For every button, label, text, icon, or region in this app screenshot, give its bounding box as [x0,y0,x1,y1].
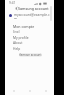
staticText: Samsung account [18,6,49,11]
button[interactable]: Mon compte [13,23,35,29]
staticText: Email [13,30,20,34]
button[interactable]: Back [38,88,54,94]
staticText: Mon compte [13,24,35,29]
staticText: About [13,40,23,44]
button[interactable]: Navigate up [13,5,19,11]
button[interactable]: Help [13,45,21,51]
staticText: 9:41 [9,1,16,5]
staticText: My profile [13,35,29,39]
button[interactable]: Recents [5,88,22,94]
button[interactable]: My profile [13,34,29,40]
staticText: Remove account [19,53,42,57]
button[interactable]: myaccount@example.com [5,12,54,19]
button[interactable]: Home [22,88,38,94]
button[interactable]: Email [13,29,20,35]
button[interactable]: About [13,39,23,45]
staticText: Help [13,46,21,50]
button[interactable]: Remove account [19,53,42,57]
staticText: myaccount@example.com [14,12,54,19]
